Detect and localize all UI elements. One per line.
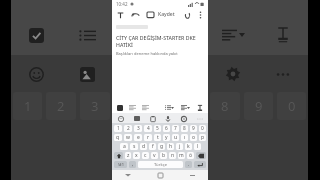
button[interactable]: 8 <box>210 92 240 120</box>
button[interactable]: w <box>124 134 132 141</box>
button[interactable]: p <box>199 134 206 141</box>
staticText: 6 <box>165 125 168 132</box>
button[interactable]: Stickers <box>75 62 99 86</box>
button[interactable]: 9 <box>244 92 273 120</box>
button[interactable]: Shift <box>114 152 123 159</box>
button[interactable]: Bulleted list <box>75 23 99 47</box>
staticText: 3 <box>91 97 99 115</box>
button[interactable]: Settings <box>221 62 245 86</box>
button[interactable]: 9 <box>190 125 197 132</box>
button[interactable]: More options <box>195 10 205 20</box>
button[interactable]: f <box>149 143 156 150</box>
button[interactable]: c <box>142 152 149 159</box>
staticText: 1 <box>117 125 120 132</box>
button[interactable]: Home <box>144 170 176 180</box>
button[interactable]: Formatting <box>115 10 125 20</box>
button[interactable]: Text color <box>115 103 124 112</box>
button[interactable]: Emoji <box>24 62 48 86</box>
button[interactable]: Recents <box>176 170 208 180</box>
staticText: , <box>132 161 134 168</box>
button[interactable]: u <box>172 134 179 141</box>
button[interactable]: Attach <box>182 10 192 20</box>
button[interactable]: More options <box>271 62 295 86</box>
button[interactable]: Redo <box>145 10 155 20</box>
button[interactable]: Settings <box>179 114 188 123</box>
staticText: ı <box>184 134 186 141</box>
button[interactable]: h <box>167 143 174 150</box>
button[interactable]: GIF <box>132 114 141 123</box>
staticText: 9 <box>192 125 195 132</box>
button[interactable]: Enter <box>194 161 206 168</box>
button[interactable]: l <box>194 143 201 150</box>
button[interactable]: x <box>133 152 140 159</box>
button[interactable]: Clipboard <box>148 114 157 123</box>
staticText: 7 <box>174 125 177 132</box>
button[interactable]: Line spacing <box>271 23 295 47</box>
button[interactable]: Checklist <box>24 23 48 47</box>
staticText: q <box>116 134 120 141</box>
button[interactable]: o <box>190 134 197 141</box>
button[interactable]: Alignment <box>179 102 191 113</box>
button[interactable]: 6 <box>163 125 170 132</box>
button[interactable]: Emoji <box>116 114 125 123</box>
button[interactable]: Voice input <box>163 114 172 123</box>
button[interactable]: List style <box>163 102 175 113</box>
staticText: 10:42 <box>116 1 128 7</box>
button[interactable]: ö <box>187 152 194 159</box>
button[interactable]: 5 <box>154 125 161 132</box>
button[interactable]: Back <box>112 170 144 180</box>
button[interactable]: Paragraph alignment <box>221 23 245 47</box>
button[interactable]: Indent <box>128 103 137 112</box>
button[interactable]: , <box>129 161 136 168</box>
button[interactable]: g <box>158 143 165 150</box>
button[interactable]: Outdent <box>141 103 150 112</box>
button[interactable]: n <box>169 152 176 159</box>
button[interactable]: j <box>176 143 183 150</box>
staticText: f <box>152 143 154 150</box>
button[interactable]: s <box>130 143 138 150</box>
button[interactable]: Kaydet <box>156 11 177 18</box>
button[interactable]: 7 <box>172 125 179 132</box>
button[interactable]: b <box>160 152 167 159</box>
staticText: !#1 <box>118 162 124 167</box>
button[interactable]: 3 <box>134 125 142 132</box>
button[interactable]: y <box>163 134 170 141</box>
staticText: ö <box>189 152 193 159</box>
button[interactable]: k <box>185 143 192 150</box>
button[interactable]: Line height <box>195 103 205 113</box>
button[interactable]: 8 <box>181 125 188 132</box>
button[interactable]: ı <box>181 134 188 141</box>
button[interactable]: More <box>195 114 204 123</box>
button[interactable]: 1 <box>114 125 122 132</box>
button[interactable]: Undo <box>130 10 140 20</box>
button[interactable]: e <box>134 134 142 141</box>
button[interactable]: t <box>154 134 161 141</box>
button[interactable]: v <box>151 152 158 159</box>
button[interactable]: d <box>140 143 147 150</box>
staticText: . <box>188 161 190 168</box>
staticText: b <box>162 152 166 159</box>
staticText: x <box>135 152 138 159</box>
button[interactable]: 4 <box>144 125 152 132</box>
button[interactable]: . <box>185 161 192 168</box>
button[interactable]: q <box>114 134 122 141</box>
staticText: p <box>201 134 205 141</box>
button[interactable]: r <box>144 134 152 141</box>
button[interactable]: Türkçe <box>138 161 183 168</box>
button[interactable]: a <box>120 143 128 150</box>
button[interactable]: Backspace <box>196 152 206 159</box>
staticText: o <box>192 134 196 141</box>
button[interactable]: 0 <box>199 125 206 132</box>
staticText: y <box>165 134 168 141</box>
staticText: 3 <box>137 125 140 132</box>
button[interactable]: 2 <box>124 125 132 132</box>
button[interactable]: m <box>178 152 185 159</box>
button[interactable]: z <box>125 152 131 159</box>
staticText: t <box>157 134 159 141</box>
button[interactable]: !#1 <box>114 161 127 168</box>
